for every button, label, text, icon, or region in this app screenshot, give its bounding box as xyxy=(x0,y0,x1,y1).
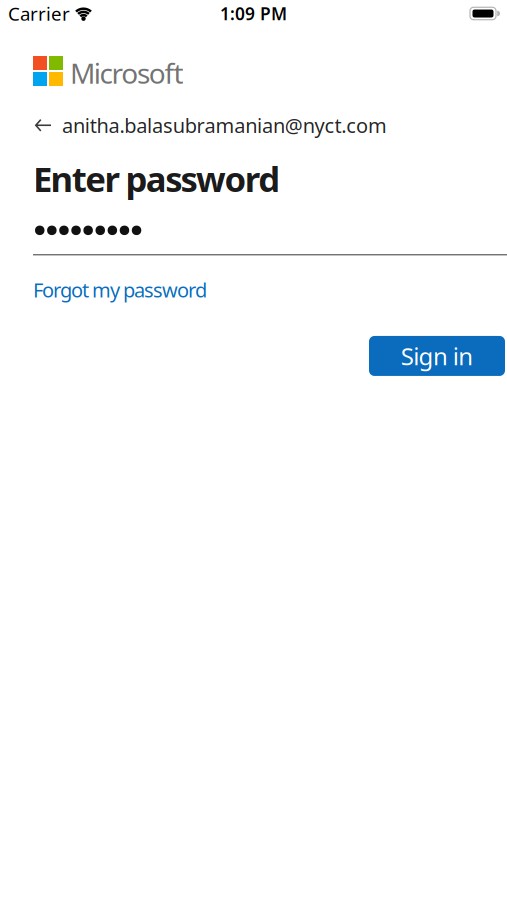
staticText: Microsoft xyxy=(70,54,183,92)
button[interactable]: Sign in xyxy=(369,336,505,376)
button[interactable]: Forgot my password xyxy=(33,276,207,303)
staticText: Sign in xyxy=(401,340,473,372)
staticText: Enter password xyxy=(33,156,280,202)
staticText: 1:09 PM xyxy=(220,2,287,25)
button[interactable]: Back xyxy=(35,119,51,131)
staticText: anitha.balasubramanian@nyct.com xyxy=(62,112,387,139)
staticText: Carrier xyxy=(8,1,70,26)
staticText: Forgot my password xyxy=(33,276,207,303)
